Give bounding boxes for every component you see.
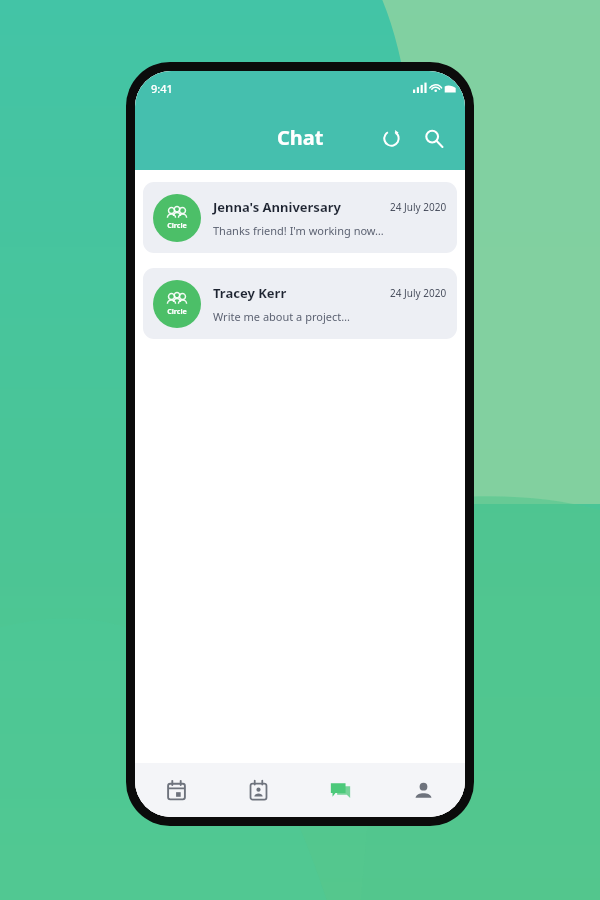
- staticText: 24 July 2020: [390, 200, 447, 214]
- button[interactable]: Calendar: [135, 763, 217, 817]
- button[interactable]: Search: [415, 120, 451, 156]
- button[interactable]: Refresh: [373, 120, 409, 156]
- staticText: Circle: [167, 221, 187, 231]
- staticText: Circle: [167, 307, 187, 317]
- staticText: Tracey Kerr: [213, 284, 287, 302]
- button[interactable]: Circle: [143, 268, 457, 339]
- button[interactable]: Chat: [299, 763, 382, 817]
- button[interactable]: Contacts: [217, 763, 299, 817]
- staticText: Thanks friend! I'm working now…: [213, 223, 384, 238]
- staticText: Jenna's Anniversary: [213, 198, 341, 216]
- button[interactable]: Circle: [143, 182, 457, 253]
- staticText: Chat: [277, 124, 324, 151]
- staticText: 24 July 2020: [390, 286, 447, 300]
- staticText: 9:41: [151, 81, 173, 96]
- button[interactable]: Profile: [382, 763, 465, 817]
- staticText: Write me about a project…: [213, 309, 350, 324]
